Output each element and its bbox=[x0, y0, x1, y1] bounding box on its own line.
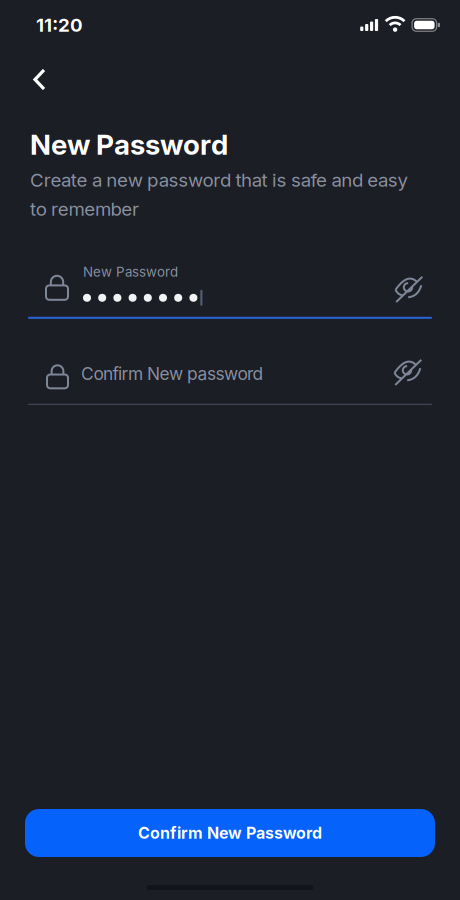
staticText: New Password bbox=[30, 128, 228, 161]
staticText: New Password bbox=[83, 264, 178, 280]
staticText: Confirm New Password bbox=[138, 824, 322, 842]
button[interactable]: Confirm New Password bbox=[25, 809, 435, 857]
staticText: Create a new password that is safe and e… bbox=[30, 169, 407, 220]
button[interactable]: Back bbox=[0, 50, 44, 89]
button[interactable]: Show password bbox=[394, 275, 460, 306]
staticText: 11:20 bbox=[36, 14, 83, 36]
staticText: Confirm New password bbox=[81, 364, 263, 384]
button[interactable]: Show password bbox=[393, 363, 460, 391]
